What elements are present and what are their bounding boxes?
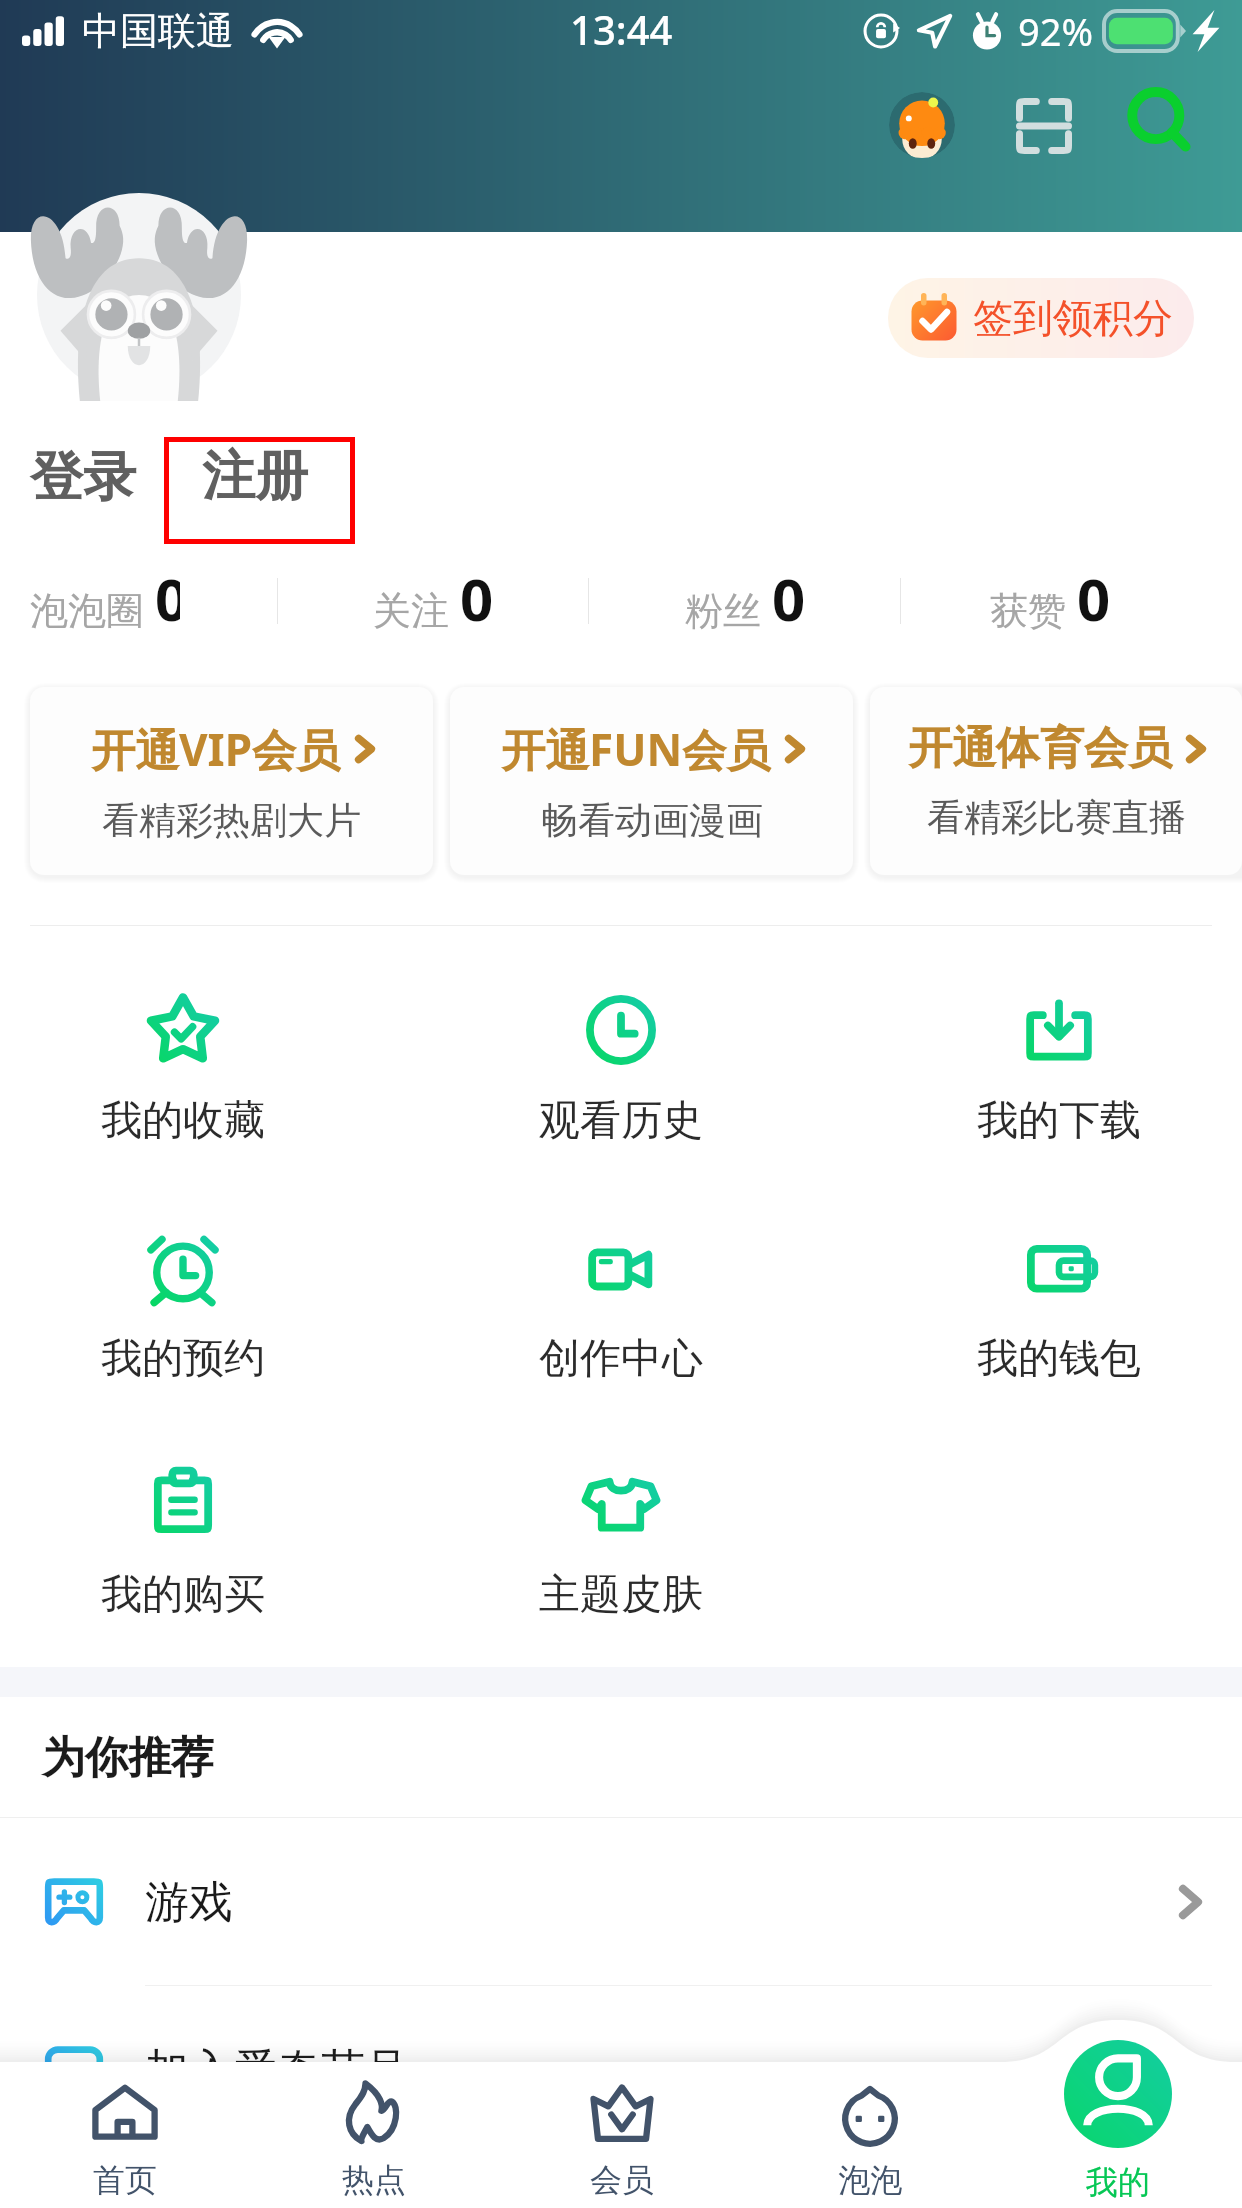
staticText: 关注 bbox=[373, 587, 449, 635]
button[interactable]: 观看历史 bbox=[471, 959, 771, 1165]
staticText: 为你推荐 bbox=[42, 1731, 214, 1785]
button[interactable]: 热点 bbox=[249, 2062, 498, 2208]
staticText: 观看历史 bbox=[539, 1095, 703, 1147]
staticText: 我的预约 bbox=[101, 1333, 265, 1385]
button[interactable]: 会员 bbox=[498, 2062, 746, 2208]
staticText: 泡泡圈 bbox=[30, 587, 144, 635]
button[interactable]: 注册 bbox=[169, 442, 350, 539]
button[interactable]: 开通VIP会员 bbox=[30, 687, 433, 875]
button[interactable]: 我的预约 bbox=[33, 1197, 333, 1403]
button[interactable]: 首页 bbox=[0, 2062, 249, 2208]
button[interactable]: 游戏 bbox=[0, 1818, 1242, 1986]
button[interactable]: 主题皮肤 bbox=[471, 1433, 771, 1639]
staticText: 签到领积分 bbox=[973, 293, 1173, 343]
staticText: 0 bbox=[1077, 559, 1111, 638]
staticText: 主题皮肤 bbox=[539, 1569, 703, 1621]
button[interactable]: 关注 bbox=[277, 557, 588, 639]
staticText: 我的钱包 bbox=[977, 1333, 1141, 1385]
staticText: 畅看动画漫画 bbox=[541, 797, 763, 844]
button[interactable]: 泡泡 bbox=[746, 2062, 994, 2208]
staticText: 0 bbox=[155, 559, 180, 638]
staticText: 游戏 bbox=[145, 1875, 233, 1930]
staticText: 中国联通 bbox=[82, 7, 234, 55]
button[interactable]: 我的 bbox=[994, 2012, 1242, 2208]
staticText: 开通体育会员 bbox=[908, 721, 1172, 776]
staticText: 加入爱奇艺号 bbox=[145, 2043, 409, 2098]
staticText: 看精彩比赛直播 bbox=[927, 794, 1186, 841]
button[interactable]: 我的钱包 bbox=[909, 1197, 1209, 1403]
staticText: 0 bbox=[772, 559, 806, 638]
button[interactable]: 我的收藏 bbox=[33, 959, 333, 1165]
staticText: 我的下载 bbox=[977, 1095, 1141, 1147]
button[interactable]: Profile bbox=[889, 92, 955, 158]
staticText: 我的收藏 bbox=[101, 1095, 265, 1147]
staticText: 我的购买 bbox=[101, 1569, 265, 1621]
staticText: 创作中心 bbox=[539, 1333, 703, 1385]
staticText: 看精彩热剧大片 bbox=[102, 797, 361, 844]
button[interactable]: 开通体育会员 bbox=[870, 687, 1242, 875]
staticText: 获赞 bbox=[990, 587, 1066, 635]
staticText: 开通FUN会员 bbox=[501, 719, 771, 779]
button[interactable]: 创作中心 bbox=[471, 1197, 771, 1403]
button[interactable]: Search bbox=[1124, 85, 1200, 161]
staticText: 登录 bbox=[30, 444, 136, 511]
staticText: 开通VIP会员 bbox=[91, 719, 341, 779]
button[interactable]: 获赞 bbox=[900, 557, 1242, 639]
button[interactable]: 加入爱奇艺号 bbox=[0, 1986, 1242, 2154]
staticText: 热点 bbox=[342, 2160, 406, 2200]
button[interactable]: 签到领积分 bbox=[888, 278, 1194, 358]
button[interactable]: 粉丝 bbox=[588, 557, 900, 639]
staticText: 会员 bbox=[590, 2160, 654, 2200]
button[interactable]: 登录 bbox=[30, 444, 136, 511]
staticText: 92% bbox=[1018, 5, 1094, 57]
button[interactable]: 泡泡圈 bbox=[0, 557, 277, 639]
staticText: 注册 bbox=[202, 443, 308, 510]
staticText: 13:44 bbox=[570, 2, 673, 56]
staticText: 0 bbox=[460, 559, 494, 638]
button[interactable]: 我的购买 bbox=[33, 1433, 333, 1639]
staticText: 首页 bbox=[93, 2160, 157, 2200]
button[interactable]: Scan bbox=[1006, 88, 1082, 164]
button[interactable]: 开通FUN会员 bbox=[450, 687, 853, 875]
staticText: 粉丝 bbox=[685, 587, 761, 635]
button[interactable]: 我的下载 bbox=[909, 959, 1209, 1165]
staticText: 我的 bbox=[1086, 2162, 1150, 2202]
staticText: 泡泡 bbox=[838, 2160, 902, 2200]
